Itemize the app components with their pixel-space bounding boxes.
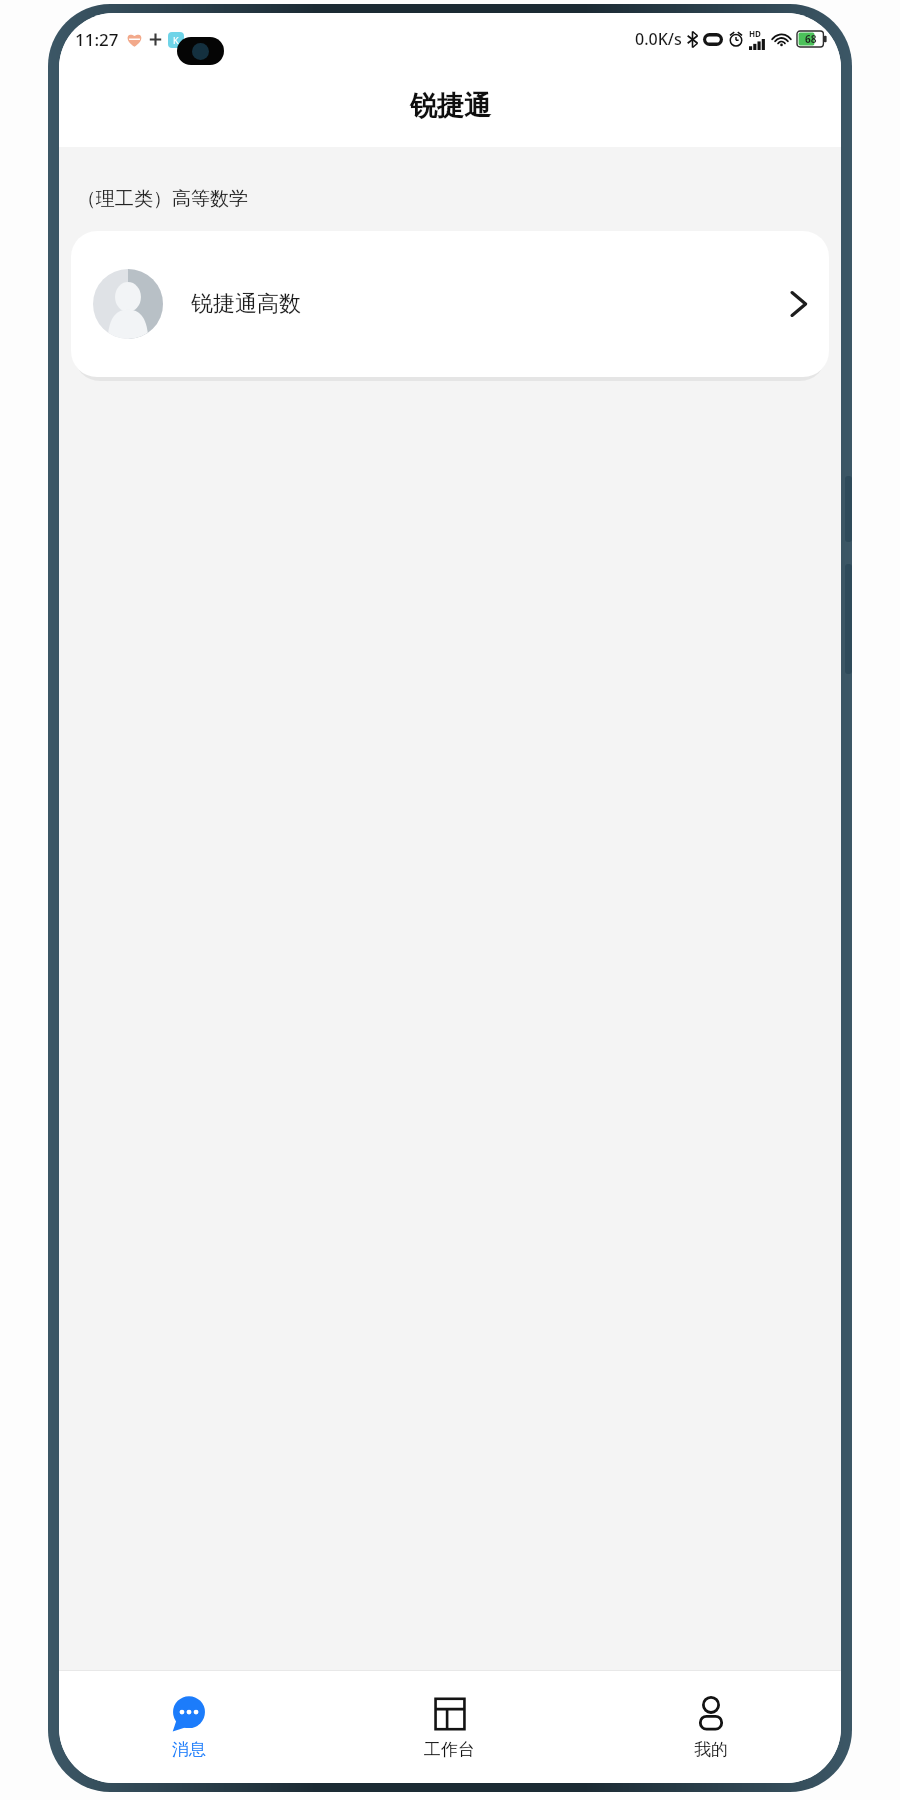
staticText: 我的 bbox=[694, 1739, 728, 1760]
staticText: 68 bbox=[805, 32, 817, 46]
staticText: 消息 bbox=[172, 1739, 206, 1760]
staticText: 0.0K/s bbox=[635, 28, 682, 50]
staticText: 工作台 bbox=[424, 1739, 475, 1760]
staticText: 11:27 bbox=[75, 28, 119, 51]
button[interactable]: 锐捷通高数 bbox=[71, 231, 829, 377]
other: Open bbox=[790, 289, 807, 319]
staticText: HD bbox=[749, 28, 761, 39]
button[interactable]: 工作台 bbox=[319, 1671, 580, 1783]
button[interactable]: 我的 bbox=[580, 1671, 841, 1783]
staticText: （理工类）高等数学 bbox=[77, 187, 248, 211]
button[interactable]: 消息 bbox=[59, 1671, 319, 1783]
staticText: K bbox=[173, 34, 179, 46]
staticText: 锐捷通 bbox=[410, 89, 491, 123]
staticText: 锐捷通高数 bbox=[191, 290, 790, 318]
